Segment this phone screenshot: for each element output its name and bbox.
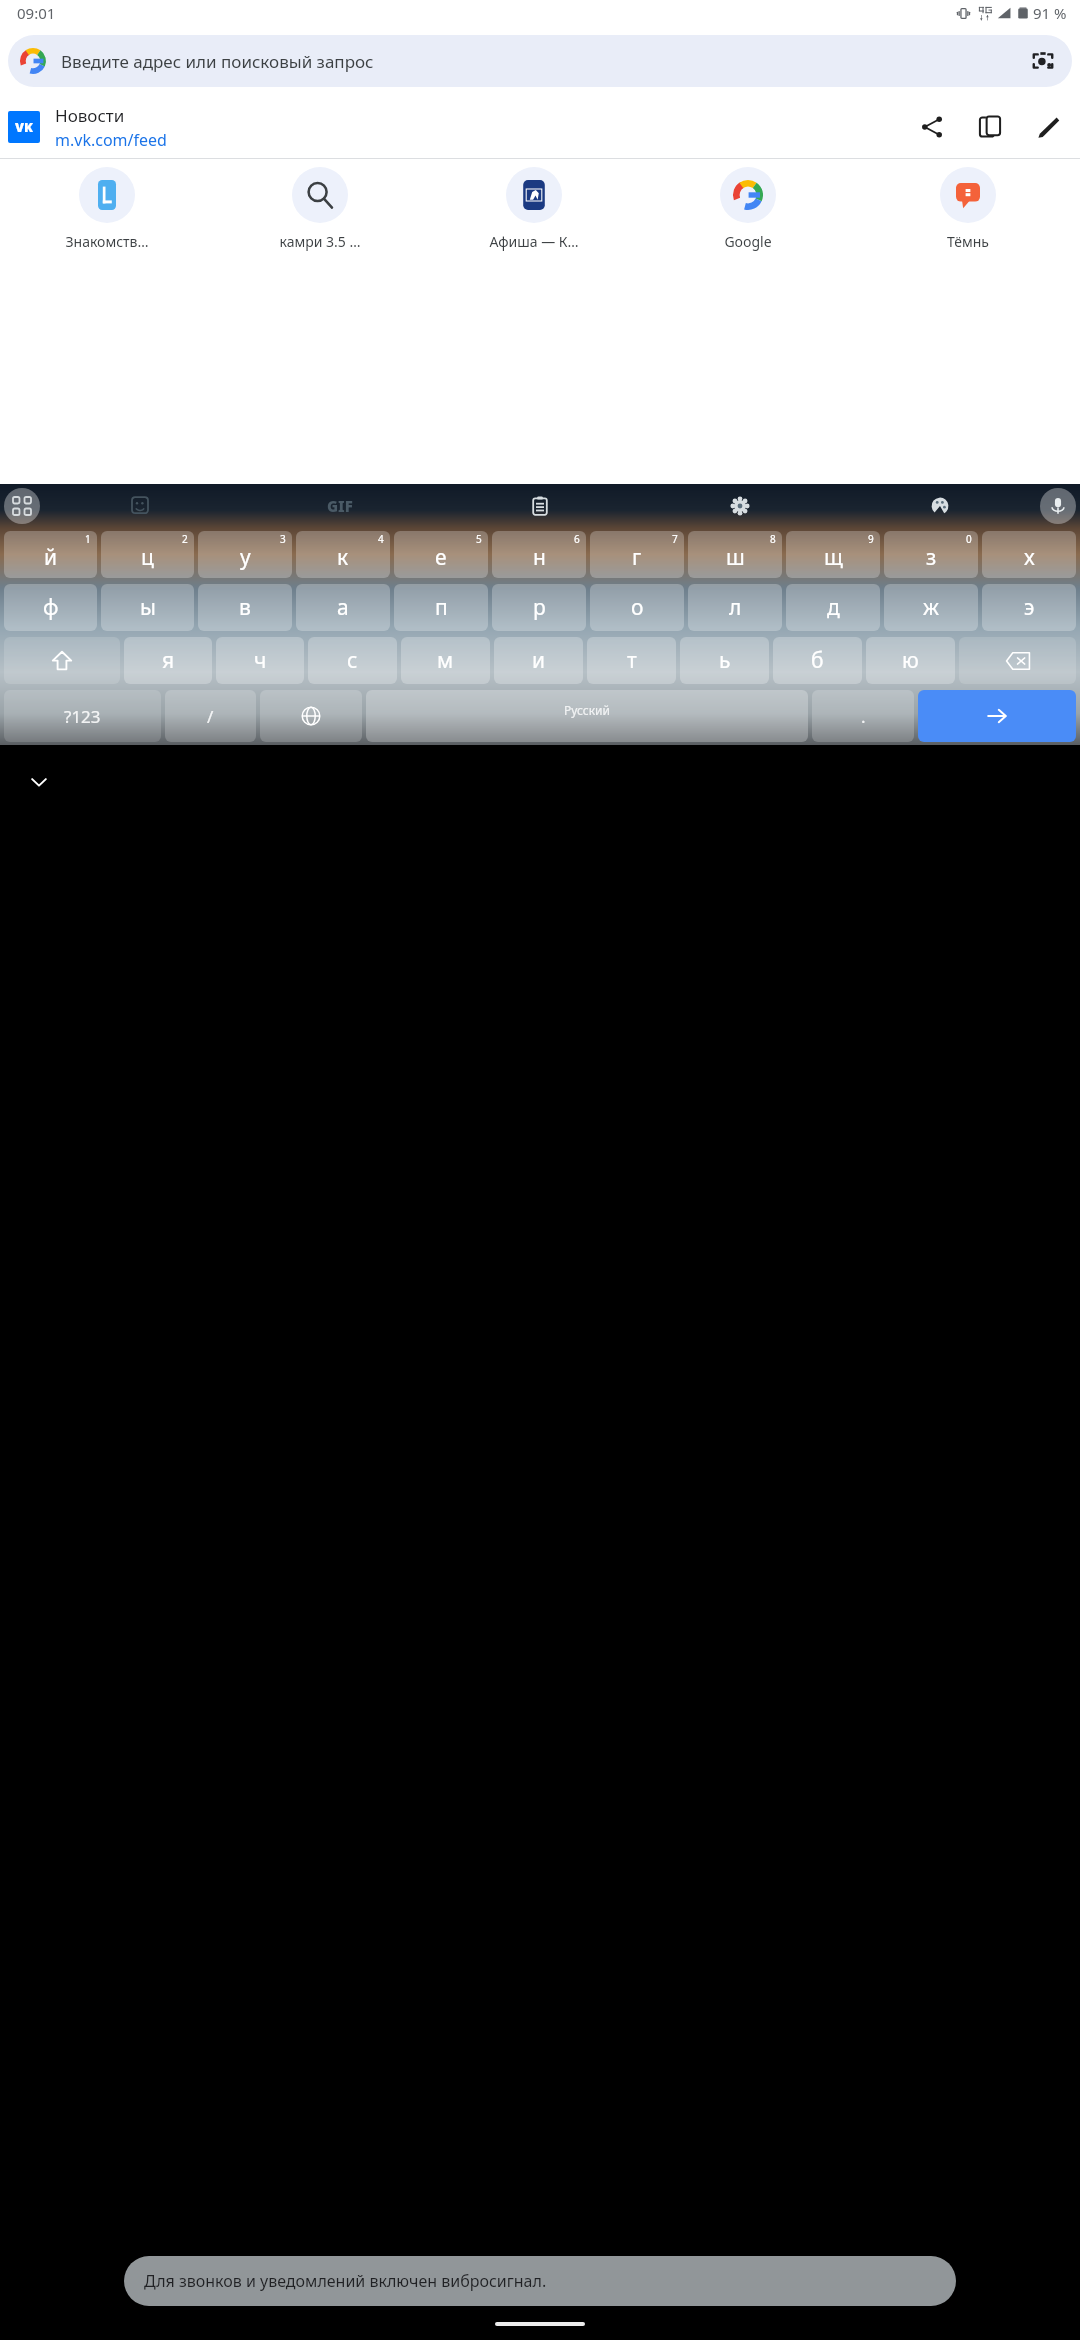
button[interactable]: б <box>773 637 862 684</box>
button[interactable]: . <box>812 690 914 742</box>
button[interactable]: Theme <box>840 484 1040 528</box>
button[interactable]: 2 <box>101 531 194 578</box>
staticText: л <box>729 593 742 622</box>
staticText: Google <box>724 232 772 251</box>
staticText: х <box>1024 543 1035 572</box>
button[interactable]: Афиша — К… <box>427 167 641 269</box>
staticText: ы <box>140 593 156 622</box>
button[interactable]: Backspace <box>959 637 1076 684</box>
staticText: 6 <box>574 532 580 546</box>
staticText: Для звонков и уведомлений включен виброс… <box>144 2270 547 2292</box>
staticText: г <box>632 543 642 572</box>
staticText: 5 <box>476 532 482 546</box>
staticText: д <box>827 593 840 622</box>
button[interactable]: в <box>198 584 292 631</box>
button[interactable]: Stickers <box>40 484 240 528</box>
button[interactable]: VK <box>0 96 1080 158</box>
staticText: Тёмнь <box>947 232 989 251</box>
staticText: Введите адрес или поисковый запрос <box>61 50 1026 73</box>
button[interactable]: ч <box>216 637 304 684</box>
staticText: й <box>44 543 58 572</box>
button[interactable]: GIF <box>240 484 440 528</box>
button[interactable]: Shift <box>4 637 120 684</box>
button[interactable]: Voice input <box>1040 488 1076 524</box>
staticText: камри 3.5 … <box>279 232 361 251</box>
button[interactable]: п <box>394 584 488 631</box>
button[interactable]: 7 <box>590 531 684 578</box>
button[interactable]: и <box>494 637 583 684</box>
staticText: ь <box>719 646 731 675</box>
button[interactable]: Знакомств… <box>0 167 213 269</box>
staticText: н <box>533 543 546 572</box>
staticText: 09:01 <box>17 3 56 23</box>
staticText: VK <box>15 118 33 136</box>
staticText: Афиша — К… <box>489 232 579 251</box>
button[interactable]: Edit <box>1026 105 1070 149</box>
button[interactable]: Share <box>910 105 954 149</box>
button[interactable]: х <box>982 531 1076 578</box>
staticText: ?123 <box>64 705 101 728</box>
staticText: т <box>627 646 637 675</box>
staticText: GIF <box>327 496 353 516</box>
button[interactable]: Hide keyboard <box>24 767 54 797</box>
staticText: п <box>435 593 448 622</box>
button[interactable]: 3 <box>198 531 292 578</box>
button[interactable]: ж <box>884 584 978 631</box>
button[interactable]: т <box>587 637 676 684</box>
staticText: и <box>532 646 546 675</box>
button[interactable]: Keyboard modes <box>4 488 40 524</box>
staticText: ю <box>902 646 919 675</box>
button[interactable]: а <box>296 584 390 631</box>
button[interactable]: л <box>688 584 782 631</box>
button[interactable]: 4 <box>296 531 390 578</box>
button[interactable]: р <box>492 584 586 631</box>
button[interactable]: о <box>590 584 684 631</box>
button[interactable]: Go <box>918 690 1076 742</box>
button[interactable]: Введите адрес или поисковый запрос <box>8 35 1072 87</box>
button[interactable]: я <box>124 637 212 684</box>
button[interactable]: Google Lens <box>1026 44 1060 78</box>
staticText: к <box>337 543 349 572</box>
button[interactable]: Clipboard <box>440 484 640 528</box>
button[interactable]: Change language <box>260 690 362 742</box>
button[interactable]: Google <box>641 167 855 269</box>
button[interactable]: ы <box>101 584 194 631</box>
staticText: ч <box>254 646 267 675</box>
button[interactable]: ф <box>4 584 97 631</box>
staticText: у <box>240 543 251 572</box>
button[interactable]: м <box>401 637 490 684</box>
button[interactable]: Тёмнь <box>855 167 1080 269</box>
staticText: Русский <box>564 702 610 718</box>
staticText: m.vk.com/feed <box>55 129 167 151</box>
button[interactable]: ?123 <box>4 690 161 742</box>
button[interactable]: д <box>786 584 880 631</box>
button[interactable]: с <box>308 637 397 684</box>
staticText: о <box>631 593 644 622</box>
button[interactable]: камри 3.5 … <box>213 167 427 269</box>
button[interactable]: Copy <box>968 105 1012 149</box>
button[interactable]: 5 <box>394 531 488 578</box>
button[interactable]: ь <box>680 637 769 684</box>
staticText: м <box>437 646 454 675</box>
button[interactable]: / <box>165 690 256 742</box>
staticText: ж <box>923 593 939 622</box>
button[interactable]: 8 <box>688 531 782 578</box>
staticText: ц <box>141 543 154 572</box>
button[interactable]: 0 <box>884 531 978 578</box>
staticText: 9 <box>868 532 874 546</box>
button[interactable]: 1 <box>4 531 97 578</box>
button[interactable]: э <box>982 584 1076 631</box>
staticText: . <box>861 705 866 728</box>
button[interactable]: Settings <box>640 484 840 528</box>
button[interactable]: 6 <box>492 531 586 578</box>
staticText: в <box>239 593 251 622</box>
button[interactable]: 9 <box>786 531 880 578</box>
staticText: э <box>1024 593 1035 622</box>
staticText: 3 <box>280 532 286 546</box>
staticText: ш <box>726 543 745 572</box>
button[interactable]: ю <box>866 637 955 684</box>
button[interactable]: Русский <box>366 690 808 742</box>
staticText: з <box>926 543 937 572</box>
staticText: 2 <box>182 532 188 546</box>
staticText: р <box>533 593 546 622</box>
